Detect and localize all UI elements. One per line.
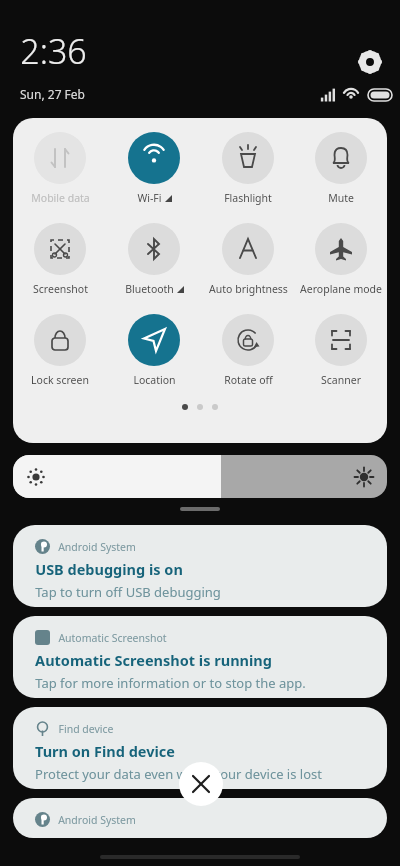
button[interactable]: Auto brightness (201, 223, 295, 296)
staticText: Android System (58, 813, 136, 827)
staticText: Automatic Screenshot (58, 631, 167, 645)
staticText: Protect your data even when your device … (35, 765, 322, 783)
staticText: Flashlight (224, 191, 272, 205)
button[interactable]: Mobile data (13, 132, 107, 205)
staticText: Android System (58, 540, 136, 554)
staticText: Scanner (321, 373, 361, 387)
staticText: Tap to turn off USB debugging (35, 583, 221, 601)
button[interactable]: Wi-Fi (107, 132, 201, 205)
button[interactable]: Scanner (295, 314, 387, 387)
button[interactable]: Brightness (13, 455, 387, 498)
staticText: Lock screen (31, 373, 89, 387)
button[interactable]: Flashlight (201, 132, 295, 205)
button[interactable]: Location (107, 314, 201, 387)
button[interactable]: Settings (356, 48, 384, 76)
staticText: 2:36 (20, 28, 87, 74)
staticText: Bluetooth (125, 282, 174, 296)
staticText: USB debugging is on (35, 559, 183, 579)
button[interactable]: Aeroplane mode (295, 223, 387, 296)
staticText: Automatic Screenshot is running (35, 650, 272, 670)
button[interactable]: Mute (295, 132, 387, 205)
button[interactable]: Find device (13, 707, 387, 789)
button[interactable]: Rotate off (201, 314, 295, 387)
button[interactable]: Screenshot (13, 223, 107, 296)
staticText: Rotate off (224, 373, 273, 387)
staticText: Auto brightness (209, 282, 288, 296)
staticText: Sun, 27 Feb (20, 86, 85, 102)
button[interactable]: Android System (13, 798, 387, 838)
staticText: Tap for more information or to stop the … (35, 674, 306, 692)
staticText: Aeroplane mode (300, 282, 382, 296)
button[interactable]: Android System (13, 525, 387, 607)
staticText: Mute (328, 191, 354, 205)
staticText: Mobile data (31, 191, 90, 205)
button[interactable]: Automatic Screenshot (13, 616, 387, 698)
button[interactable]: Bluetooth (107, 223, 201, 296)
staticText: Wi-Fi (137, 191, 162, 205)
button[interactable]: Close (179, 762, 223, 806)
staticText: Screenshot (33, 282, 88, 296)
button[interactable]: Lock screen (13, 314, 107, 387)
staticText: Find device (58, 722, 114, 736)
staticText: Turn on Find device (35, 741, 175, 761)
staticText: Location (133, 373, 176, 387)
